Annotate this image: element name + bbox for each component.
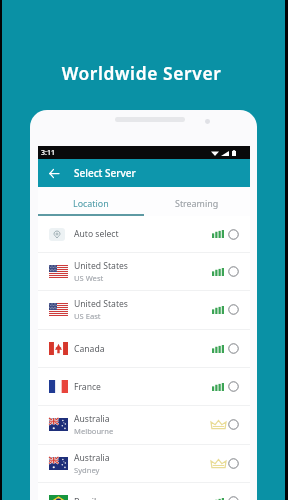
staticText: US West: [74, 273, 104, 283]
button[interactable]: Brazil: [38, 483, 250, 500]
staticText: Sydney: [74, 465, 100, 475]
staticText: Canada: [74, 343, 105, 355]
button[interactable]: United States: [38, 291, 250, 328]
button[interactable]: Back: [46, 159, 61, 187]
staticText: 3:11: [41, 148, 55, 158]
staticText: Auto select: [74, 228, 119, 240]
staticText: US East: [74, 311, 101, 321]
staticText: Select Server: [74, 166, 136, 180]
staticText: Melbourne: [74, 426, 114, 436]
staticText: Australia: [74, 452, 110, 464]
staticText: Location: [73, 197, 109, 209]
staticText: France: [74, 381, 101, 393]
staticText: Brazil: [74, 496, 97, 500]
button[interactable]: Auto select: [38, 216, 250, 252]
button[interactable]: France: [38, 368, 250, 405]
staticText: United States: [74, 260, 128, 272]
button[interactable]: Streaming: [144, 187, 250, 214]
staticText: United States: [74, 298, 128, 310]
button[interactable]: Canada: [38, 330, 250, 367]
button[interactable]: Location: [38, 187, 144, 214]
button[interactable]: Australia: [38, 406, 250, 443]
button[interactable]: Australia: [38, 445, 250, 482]
staticText: Streaming: [175, 197, 219, 209]
staticText: Australia: [74, 413, 110, 425]
staticText: Worldwide Server: [0, 61, 283, 85]
button[interactable]: United States: [38, 253, 250, 290]
